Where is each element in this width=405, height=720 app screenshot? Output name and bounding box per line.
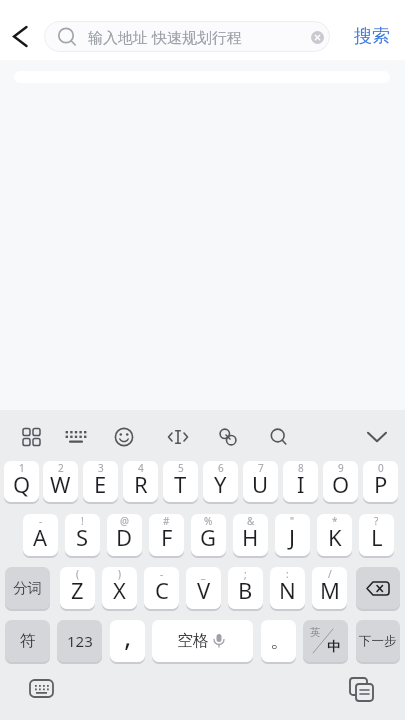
button[interactable]: _ [186,567,221,609]
staticText: / [328,567,332,581]
staticText: G [200,522,217,552]
button[interactable]: 英 [303,620,348,662]
staticText: 符 [20,631,36,651]
staticText: X [113,575,126,605]
staticText: Z [71,575,84,605]
button[interactable] [208,417,248,457]
button[interactable]: 4 [123,461,158,502]
staticText: D [116,522,133,552]
button[interactable]: % [191,514,226,556]
staticText: 。 [270,628,290,653]
staticText: H [242,522,259,552]
button[interactable]: 输入地址 快速规划行程 [44,21,330,52]
button[interactable]: - [144,567,179,609]
button[interactable]: : [270,567,305,609]
button[interactable] [104,417,144,457]
staticText: I [297,469,305,499]
button[interactable]: # [149,514,184,556]
staticText: : [286,567,289,581]
staticText: % [204,514,213,528]
button[interactable]: ; [228,567,263,609]
staticText: C [155,575,169,605]
staticText: A [33,522,48,552]
staticText: T [174,469,187,499]
staticText: W [50,469,71,499]
button[interactable]: 9 [323,461,358,502]
button[interactable]: 3 [83,461,118,502]
button[interactable]: 7 [243,461,278,502]
button[interactable]: ! [65,514,100,556]
staticText: M [320,575,340,605]
button[interactable]: & [233,514,268,556]
button[interactable] [259,417,299,457]
button[interactable]: 6 [203,461,238,502]
button[interactable] [311,31,324,44]
button[interactable]: ) [102,567,137,609]
staticText: 9 [338,461,344,475]
staticText: P [374,469,388,499]
staticText: 下一步 [359,633,397,649]
staticText: 4 [138,461,144,475]
button[interactable]: - [23,514,58,556]
button[interactable] [357,417,397,457]
staticText: 6 [218,461,224,475]
staticText: 2 [58,461,64,475]
staticText: & [247,514,255,528]
button[interactable]: 8 [283,461,318,502]
staticText: S [76,522,89,552]
staticText: L [371,522,383,552]
button[interactable]: 0 [363,461,398,502]
button[interactable]: 搜索 [343,20,401,52]
staticText: J [289,522,296,552]
staticText: - [39,514,43,528]
button[interactable]: ? [359,514,394,556]
staticText: , [124,620,132,654]
button[interactable]: ( [60,567,95,609]
staticText: ) [118,567,121,581]
staticText: B [238,575,253,605]
staticText: @ [120,514,129,528]
staticText: ( [76,567,79,581]
button[interactable] [356,567,400,609]
button[interactable] [0,672,405,720]
button[interactable]: / [312,567,347,609]
staticText: U [252,469,269,499]
staticText: Y [214,469,227,499]
button[interactable] [56,417,96,457]
staticText: _ [201,567,206,581]
button[interactable]: * [317,514,352,556]
staticText: 123 [67,631,93,651]
button[interactable]: 符 [5,620,50,662]
staticText: F [161,522,173,552]
staticText: 0 [378,461,384,475]
button[interactable]: 5 [163,461,198,502]
button[interactable] [12,417,52,457]
button[interactable]: " [275,514,310,556]
staticText: 1 [19,461,25,475]
staticText: ? [374,514,379,528]
button[interactable]: , [110,620,145,662]
staticText: N [279,575,296,605]
staticText: Q [13,469,31,499]
button[interactable]: 分词 [5,567,50,609]
button[interactable]: 2 [43,461,78,502]
button[interactable]: @ [107,514,142,556]
staticText: # [163,514,170,528]
staticText: 5 [178,461,184,475]
staticText: 空格 [177,631,209,651]
button[interactable]: 下一步 [356,620,400,662]
staticText: 8 [298,461,304,475]
staticText: ! [81,514,84,528]
button[interactable]: 。 [261,620,296,662]
staticText: 分词 [13,579,42,597]
button[interactable] [158,417,198,457]
staticText: E [94,469,107,499]
button[interactable]: 123 [57,620,102,662]
staticText: R [134,469,148,499]
staticText: 输入地址 快速规划行程 [88,27,242,47]
button[interactable]: 1 [4,461,39,502]
staticText: 中 [327,638,340,654]
button[interactable]: 空格 [152,620,253,662]
staticText: V [197,575,211,605]
button[interactable] [10,25,32,49]
